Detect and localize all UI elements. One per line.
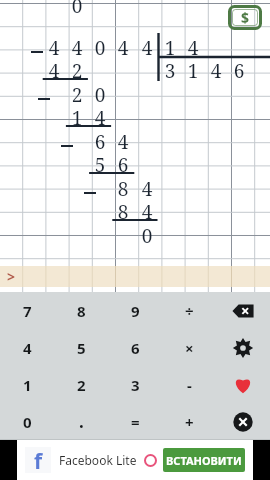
staticText: f	[34, 447, 43, 473]
button[interactable]: ×	[162, 329, 216, 366]
staticText: 0	[66, 0, 88, 19]
staticText: 4	[136, 35, 158, 61]
button[interactable]: 0	[0, 403, 54, 440]
staticText: 2	[66, 82, 88, 108]
staticText: 1	[159, 35, 181, 61]
staticText: 4	[205, 58, 227, 84]
staticText: 4	[23, 338, 32, 358]
staticText: 4	[136, 199, 158, 225]
staticText: 4	[112, 35, 134, 61]
staticText: 5	[89, 152, 111, 178]
staticText: 4	[66, 35, 88, 61]
staticText: 4	[43, 58, 65, 84]
staticText: 8	[112, 176, 134, 202]
staticText: 0	[136, 223, 158, 249]
button[interactable]: Backspace	[216, 292, 270, 329]
staticText: -	[187, 375, 192, 395]
button[interactable]: 2	[54, 366, 108, 403]
staticText: 5	[77, 338, 86, 358]
button[interactable]: f	[17, 440, 253, 480]
staticText: 0	[23, 412, 32, 432]
staticText: 6	[228, 58, 250, 84]
staticText: 3	[159, 58, 181, 84]
staticText: .	[79, 410, 84, 433]
button[interactable]: >	[0, 266, 270, 287]
staticText: ÷	[185, 301, 194, 321]
button[interactable]: 6	[108, 329, 162, 366]
staticText: 1	[66, 105, 88, 131]
button[interactable]: 8	[54, 292, 108, 329]
button[interactable]: Favorites	[216, 366, 270, 403]
staticText: 4	[182, 35, 204, 61]
staticText: 2	[77, 375, 86, 395]
staticText: 2	[66, 58, 88, 84]
staticText: 6	[89, 129, 111, 155]
button[interactable]: 9	[108, 292, 162, 329]
button[interactable]: =	[108, 403, 162, 440]
staticText: 7	[23, 301, 32, 321]
staticText: 8	[112, 199, 134, 225]
button[interactable]: ÷	[162, 292, 216, 329]
staticText: >	[7, 267, 16, 286]
button[interactable]: Clear	[216, 403, 270, 440]
button[interactable]: ВСТАНОВИТИ	[163, 448, 245, 472]
staticText: 1	[182, 58, 204, 84]
staticText: 1	[23, 375, 32, 395]
staticText: 8	[77, 301, 86, 321]
staticText: 0	[89, 35, 111, 61]
button[interactable]: Settings	[216, 329, 270, 366]
staticText: 6	[112, 152, 134, 178]
staticText: ВСТАНОВИТИ	[166, 453, 242, 468]
staticText: 0	[89, 82, 111, 108]
button[interactable]: 1	[0, 366, 54, 403]
staticText: 9	[131, 301, 140, 321]
staticText: 4	[43, 35, 65, 61]
staticText: ×	[185, 338, 194, 358]
staticText: +	[185, 412, 194, 432]
staticText: 4	[112, 129, 134, 155]
staticText: 4	[89, 105, 111, 131]
button[interactable]: .	[54, 403, 108, 440]
staticText: Facebook Lite	[59, 452, 137, 468]
button[interactable]: +	[162, 403, 216, 440]
button[interactable]: Buy, remove ads	[228, 5, 262, 30]
staticText: 4	[136, 176, 158, 202]
staticText: 6	[131, 338, 140, 358]
button[interactable]: 5	[54, 329, 108, 366]
staticText: $	[241, 8, 250, 27]
button[interactable]: 7	[0, 292, 54, 329]
staticText: =	[131, 412, 140, 432]
staticText: 3	[131, 375, 140, 395]
button[interactable]: 4	[0, 329, 54, 366]
button[interactable]: 3	[108, 366, 162, 403]
button[interactable]: -	[162, 366, 216, 403]
